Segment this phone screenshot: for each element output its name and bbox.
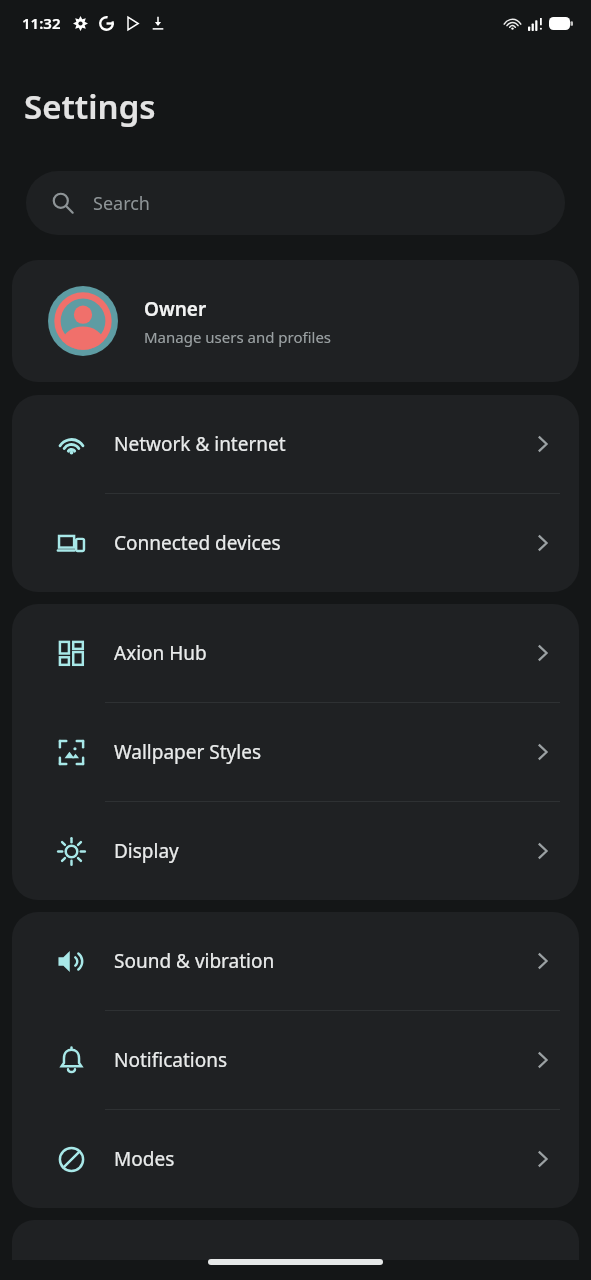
button[interactable]: Notifications (12, 1011, 579, 1109)
button[interactable]: Display (12, 802, 579, 900)
staticText: Display (114, 838, 533, 864)
button[interactable]: Axion Hub (12, 604, 579, 702)
button[interactable]: Wallpaper Styles (12, 703, 579, 801)
staticText: Settings (24, 84, 156, 129)
staticText: Wallpaper Styles (114, 739, 533, 765)
button[interactable]: Network & internet (12, 395, 579, 493)
button[interactable]: Modes (12, 1110, 579, 1208)
button[interactable]: Connected devices (12, 494, 579, 592)
staticText: Owner (144, 296, 207, 322)
staticText: Axion Hub (114, 640, 533, 666)
staticText: Search (93, 191, 150, 216)
staticText: Notifications (114, 1047, 533, 1073)
staticText: 11:32 (22, 13, 61, 33)
staticText: Network & internet (114, 431, 533, 457)
button[interactable]: Owner (12, 260, 579, 382)
staticText: Manage users and profiles (144, 327, 332, 347)
staticText: Connected devices (114, 530, 533, 556)
button[interactable]: Search (26, 171, 565, 235)
staticText: Modes (114, 1146, 533, 1172)
button[interactable]: Sound & vibration (12, 912, 579, 1010)
staticText: Sound & vibration (114, 948, 533, 974)
